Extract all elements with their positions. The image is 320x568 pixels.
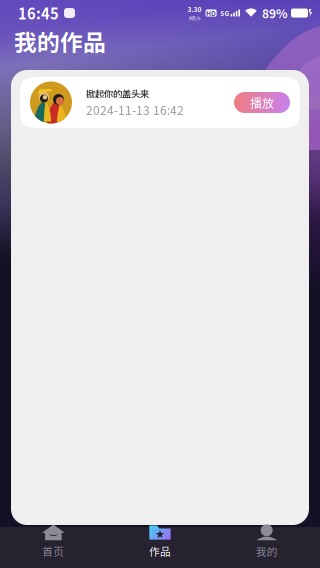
staticText: 我的 xyxy=(256,543,278,559)
staticText: 播放 xyxy=(250,94,274,111)
staticText: 5G xyxy=(221,8,230,18)
staticText: 首页 xyxy=(42,543,64,559)
button[interactable]: 首页 xyxy=(0,518,107,564)
staticText: HD xyxy=(206,8,216,18)
button[interactable]: 掀起你的盖头来 xyxy=(20,77,300,128)
staticText: 作品 xyxy=(149,543,171,559)
staticText: KB/s xyxy=(189,14,200,22)
staticText: 我的作品 xyxy=(14,25,106,57)
staticText: 掀起你的盖头来 xyxy=(86,87,149,100)
staticText: 3.30 xyxy=(188,4,202,14)
staticText: 16:45 xyxy=(18,2,59,24)
staticText: 2024-11-13 16:42 xyxy=(86,101,184,118)
button[interactable]: 我的 xyxy=(213,518,320,564)
staticText: 89% xyxy=(262,4,288,22)
button[interactable]: 作品 xyxy=(107,518,213,564)
